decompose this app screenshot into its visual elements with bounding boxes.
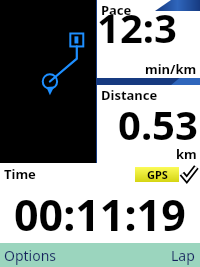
button[interactable]: Options bbox=[0, 243, 100, 267]
staticText: 00:11:19 bbox=[14, 185, 186, 240]
button[interactable]: Lap bbox=[100, 243, 200, 267]
staticText: 12:31 bbox=[97, 0, 198, 66]
staticText: min/km bbox=[145, 60, 197, 78]
staticText: Time bbox=[4, 165, 36, 183]
button[interactable]: Pace bbox=[97, 0, 200, 78]
staticText: GPS bbox=[147, 167, 168, 182]
staticText: Distance bbox=[101, 86, 158, 104]
staticText: Options bbox=[4, 246, 57, 265]
button[interactable]: Route map bbox=[0, 0, 96, 163]
button[interactable]: GPS signal acquired bbox=[135, 166, 197, 182]
staticText: Pace bbox=[101, 1, 132, 19]
button[interactable]: Distance bbox=[97, 85, 200, 163]
staticText: km bbox=[176, 145, 197, 163]
staticText: 0.53 bbox=[118, 97, 198, 151]
staticText: Lap bbox=[171, 246, 195, 265]
